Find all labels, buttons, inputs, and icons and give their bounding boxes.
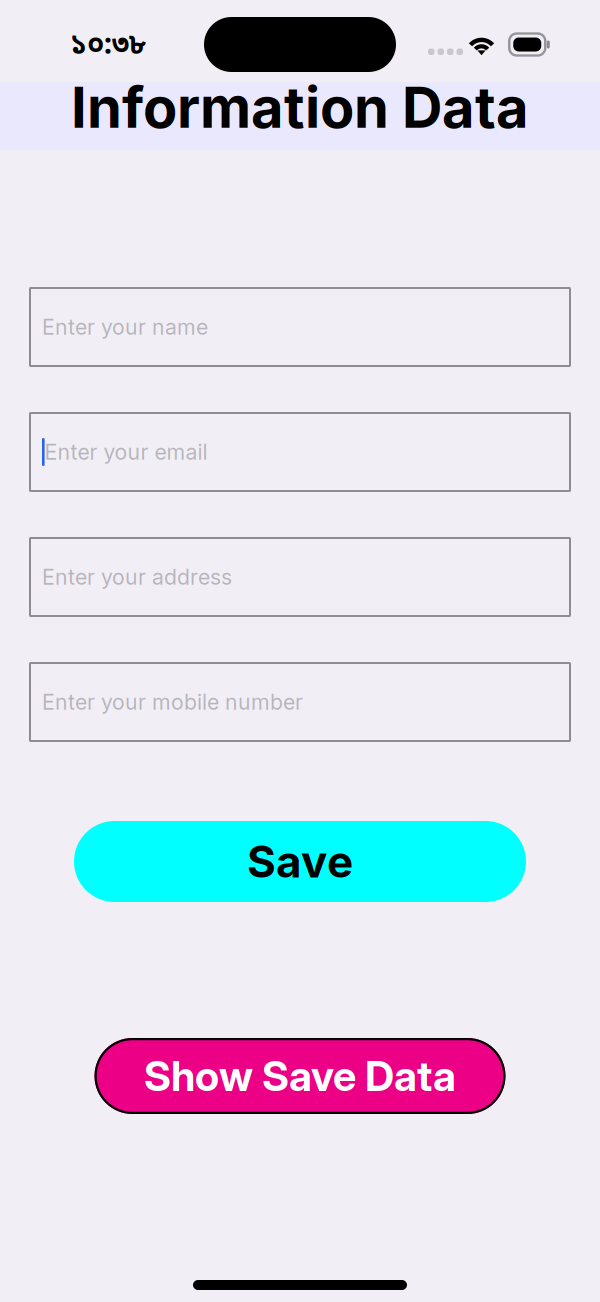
staticText: ১০:৩৮	[70, 28, 146, 65]
staticText: Enter your name	[42, 314, 208, 340]
staticText: Save	[247, 835, 353, 888]
staticText: Information Data	[71, 74, 529, 141]
button[interactable]: Enter your email	[30, 413, 570, 491]
button[interactable]: Save	[74, 821, 526, 902]
button[interactable]: Enter your name	[30, 288, 570, 366]
staticText: Show Save Data	[144, 1051, 456, 1101]
staticText: Enter your mobile number	[42, 689, 303, 715]
button[interactable]: Enter your mobile number	[30, 663, 570, 741]
staticText: Enter your address	[42, 564, 232, 590]
button[interactable]: Enter your address	[30, 538, 570, 616]
staticText: Enter your email	[45, 439, 208, 465]
button[interactable]: Show Save Data	[94, 1038, 505, 1114]
